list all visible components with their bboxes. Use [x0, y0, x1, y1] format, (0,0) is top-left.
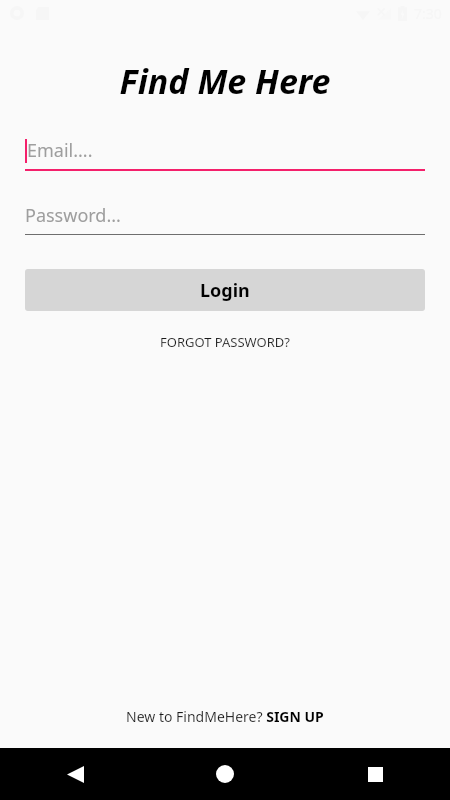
staticText: New to FindMeHere? SIGN UP	[126, 707, 324, 726]
button[interactable]: Password...	[25, 203, 425, 235]
staticText: Email....	[27, 138, 93, 163]
staticText: Find Me Here	[0, 58, 450, 104]
button[interactable]: Back	[0, 748, 150, 800]
button[interactable]: New to FindMeHere? SIGN UP	[120, 703, 330, 730]
button[interactable]: Recent apps	[300, 748, 450, 800]
staticText: FORGOT PASSWORD?	[160, 333, 290, 351]
button[interactable]: FORGOT PASSWORD?	[152, 329, 298, 355]
staticText: Password...	[25, 203, 121, 228]
staticText: Login	[200, 278, 250, 303]
button[interactable]: Email....	[25, 138, 425, 171]
button[interactable]: Home	[150, 748, 300, 800]
button[interactable]: Login	[25, 269, 425, 311]
